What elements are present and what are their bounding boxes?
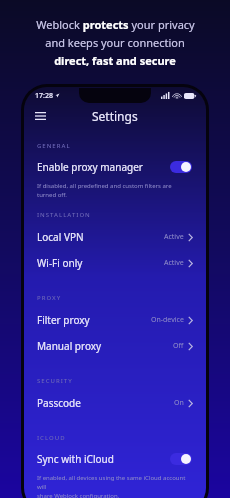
staticText: On xyxy=(174,398,184,408)
staticText: Wi-Fi only xyxy=(37,256,83,270)
staticText: If enabled, all devices using the same i… xyxy=(37,474,195,498)
staticText: Active xyxy=(164,232,184,242)
staticText: If disabled, all predefined and custom f… xyxy=(37,182,172,199)
staticText: SECURITY xyxy=(37,377,73,385)
staticText: ICLOUD xyxy=(37,434,66,442)
button[interactable]: Manual proxy xyxy=(31,333,199,359)
staticText: Manual proxy xyxy=(37,339,102,353)
staticText: Active xyxy=(164,258,184,268)
button[interactable]: Local VPN xyxy=(31,224,199,250)
staticText: Filter proxy xyxy=(37,313,90,327)
staticText: Off xyxy=(173,341,184,351)
button[interactable]: Passcode xyxy=(31,390,199,416)
staticText: INSTALLATION xyxy=(37,211,91,219)
button[interactable]: Filter proxy xyxy=(31,307,199,333)
button[interactable]: Menu xyxy=(30,106,50,126)
staticText: Weblock protects your privacy xyxy=(36,17,195,32)
staticText: PROXY xyxy=(37,294,62,302)
staticText: and keeps your connection xyxy=(45,35,185,50)
staticText: Passcode xyxy=(37,396,81,410)
button[interactable]: Sync with iCloud xyxy=(31,447,199,471)
staticText: direct, fast and secure xyxy=(54,53,176,68)
staticText: Settings xyxy=(92,108,138,124)
staticText: 17:28 xyxy=(35,91,53,101)
staticText: Sync with iCloud xyxy=(37,452,114,466)
staticText: GENERAL xyxy=(37,142,71,150)
button[interactable]: Wi-Fi only xyxy=(31,250,199,276)
staticText: Enable proxy manager xyxy=(37,160,143,174)
staticText: Local VPN xyxy=(37,230,84,244)
button[interactable]: Enable proxy manager xyxy=(31,155,199,179)
staticText: On-device xyxy=(151,315,184,325)
